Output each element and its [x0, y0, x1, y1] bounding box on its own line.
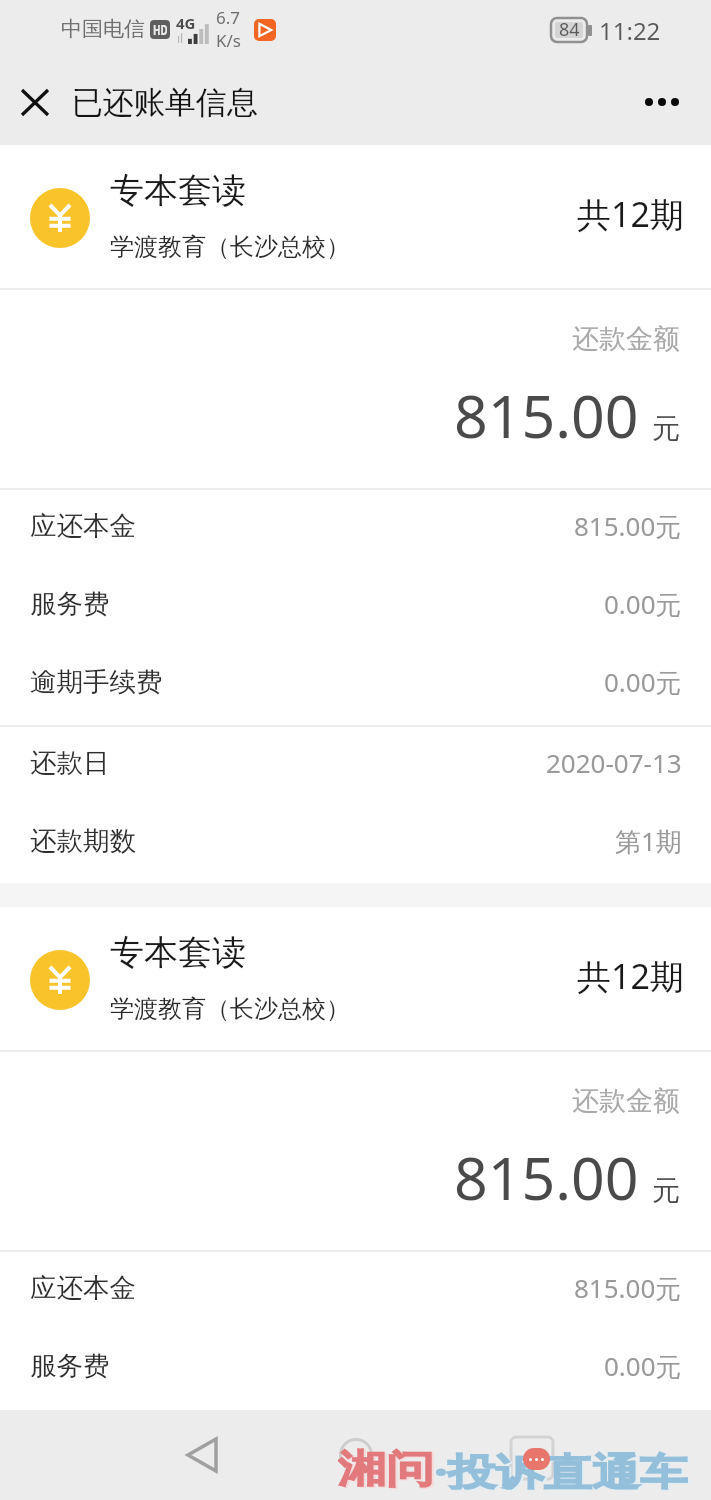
staticText: 专本套读 — [110, 169, 246, 212]
button[interactable]: 专本套读 — [0, 145, 711, 288]
staticText: ·投诉直通车 — [434, 1445, 688, 1490]
staticText: K/s — [216, 29, 241, 52]
staticText: 服务费 — [30, 587, 110, 620]
staticText: 还款期数 — [30, 824, 136, 857]
staticText: 815.00 — [454, 375, 639, 455]
staticText: 学渡教育（长沙总校） — [110, 232, 350, 262]
staticText: 已还账单信息 — [72, 83, 258, 122]
button[interactable]: 返回 — [170, 1436, 234, 1474]
button[interactable]: 还款日 — [0, 727, 711, 805]
staticText: 学渡教育（长沙总校） — [110, 994, 350, 1024]
staticText: 0.00元 — [604, 586, 682, 622]
staticText: 还款金额 — [572, 1084, 680, 1118]
staticText: 815.00元 — [574, 508, 682, 544]
staticText: 专本套读 — [110, 931, 246, 974]
staticText: 逾期手续费 — [30, 665, 163, 698]
staticText: 4G — [176, 13, 196, 33]
staticText: 元 — [652, 411, 680, 446]
button[interactable]: 更多 — [627, 69, 697, 135]
button[interactable]: 还款期数 — [0, 805, 711, 883]
staticText: ·投诉直通车 — [436, 1446, 690, 1491]
staticText: 应还本金 — [30, 509, 136, 542]
button[interactable]: 逾期手续费 — [0, 646, 711, 724]
button[interactable]: 服务费 — [0, 568, 711, 646]
staticText: 服务费 — [30, 1349, 110, 1382]
button[interactable]: 应还本金 — [0, 490, 711, 568]
staticText: 应还本金 — [30, 1271, 136, 1304]
staticText: 815.00元 — [574, 1270, 682, 1306]
staticText: 815.00 — [454, 1137, 639, 1217]
staticText: 元 — [652, 1173, 680, 1208]
button[interactable]: 关闭 — [0, 70, 70, 134]
staticText: HD — [153, 20, 167, 39]
staticText: 6.7 — [216, 6, 241, 29]
staticText: 中国电信 — [61, 16, 145, 42]
staticText: 0.00元 — [604, 1348, 682, 1384]
staticText: 共12期 — [577, 191, 684, 237]
staticText: ıl — [177, 30, 184, 46]
button[interactable]: 应还本金 — [0, 1252, 711, 1330]
staticText: 湘问 — [340, 1446, 436, 1491]
staticText: 84 — [559, 17, 580, 42]
staticText: 还款日 — [30, 746, 110, 779]
staticText: 第1期 — [615, 823, 682, 859]
button[interactable]: 服务费 — [0, 1330, 711, 1408]
staticText: 湘问 — [338, 1445, 434, 1490]
staticText: 共12期 — [577, 953, 684, 999]
staticText: 还款金额 — [572, 322, 680, 356]
button[interactable]: 专本套读 — [0, 907, 711, 1050]
staticText: 11:22 — [599, 14, 661, 47]
staticText: 0.00元 — [604, 664, 682, 700]
staticText: 2020-07-13 — [546, 745, 682, 780]
